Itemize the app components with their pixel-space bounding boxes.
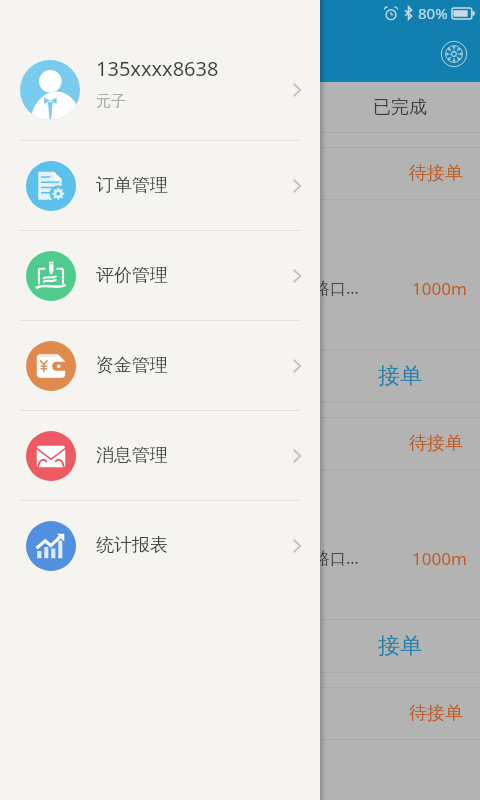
staticText: 元子 [96,92,126,111]
staticText: 资金管理 [96,354,285,377]
button[interactable]: 市中路口… [0,740,480,800]
button[interactable]: 接单 [320,350,480,402]
staticText: 评价管理 [96,264,285,287]
button[interactable]: 资金管理 [0,321,320,410]
staticText: 待接单 [409,162,463,185]
staticText: 1000m [412,277,467,299]
button[interactable]: 市中路口… [0,470,480,619]
button[interactable]: 已完成 [320,82,480,132]
button[interactable]: 135xxxx8638 [0,39,320,140]
staticText: 市中路口… [282,277,359,299]
button[interactable]: 待接单 [0,688,480,739]
staticText: 市中路口… [282,547,359,569]
button[interactable]: 统计报表 [0,501,320,590]
button[interactable]: 市中路口… [0,200,480,349]
staticText: 接单 [378,632,422,660]
button[interactable]: 待接单 [0,82,160,132]
staticText: 消息管理 [96,444,285,467]
staticText: 接单 [378,362,422,390]
button[interactable]: 订单管理 [0,141,320,230]
staticText: 135xxxx8638 [96,55,219,82]
staticText: 订单管理 [96,174,285,197]
staticText: 待接单 [409,702,463,725]
staticText: 待接单 [53,96,107,119]
button[interactable]: 待接单 [0,148,480,199]
button[interactable]: 消息管理 [0,411,320,500]
staticText: 1000m [412,547,467,569]
staticText: 统计报表 [96,534,285,557]
staticText: 已完成 [373,96,427,119]
button[interactable]: Nearby [440,40,468,68]
button[interactable]: 待接单 [0,418,480,469]
button[interactable]: 接单 [320,620,480,672]
button[interactable]: 评价管理 [0,231,320,320]
staticText: 80% [418,3,448,23]
staticText: 待接单 [409,432,463,455]
